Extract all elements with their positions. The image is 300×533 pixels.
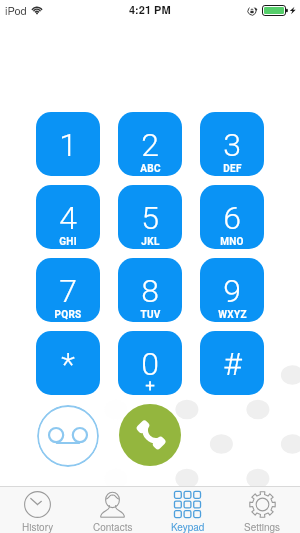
- staticText: 7: [59, 272, 77, 310]
- button[interactable]: 1: [36, 112, 100, 176]
- staticText: PQRS: [54, 309, 82, 321]
- button[interactable]: 7: [36, 258, 100, 322]
- button[interactable]: Contacts: [75, 487, 150, 533]
- button[interactable]: History: [0, 487, 75, 533]
- staticText: #: [223, 345, 242, 383]
- staticText: 3: [223, 126, 241, 164]
- staticText: 0: [141, 345, 159, 383]
- staticText: WXYZ: [218, 309, 247, 321]
- staticText: 4: [59, 199, 77, 237]
- staticText: ABC: [140, 163, 161, 175]
- staticText: 6: [223, 199, 241, 237]
- staticText: Keypad: [171, 520, 205, 533]
- button[interactable]: 9: [200, 258, 264, 322]
- staticText: *: [61, 345, 75, 383]
- button[interactable]: *: [36, 331, 100, 395]
- button[interactable]: Keypad: [150, 487, 225, 533]
- staticText: 9: [223, 272, 241, 310]
- staticText: Settings: [244, 520, 281, 533]
- button[interactable]: Voicemail: [37, 405, 99, 467]
- button[interactable]: 2: [118, 112, 182, 176]
- staticText: +: [145, 375, 155, 395]
- staticText: History: [22, 520, 54, 533]
- staticText: MNO: [220, 236, 244, 248]
- button[interactable]: 0: [118, 331, 182, 395]
- button[interactable]: 4: [36, 185, 100, 249]
- staticText: DEF: [223, 163, 242, 175]
- staticText: 4:21 PM: [129, 2, 171, 18]
- staticText: GHI: [59, 236, 77, 248]
- button[interactable]: Call: [119, 404, 181, 466]
- button[interactable]: #: [200, 331, 264, 395]
- button[interactable]: 3: [200, 112, 264, 176]
- staticText: 2: [141, 126, 159, 164]
- staticText: JKL: [141, 236, 160, 248]
- staticText: 8: [141, 272, 159, 310]
- button[interactable]: 8: [118, 258, 182, 322]
- staticText: 1: [59, 126, 77, 164]
- staticText: Contacts: [93, 520, 133, 533]
- button[interactable]: 5: [118, 185, 182, 249]
- staticText: TUV: [140, 309, 161, 321]
- staticText: 5: [141, 199, 159, 237]
- button[interactable]: 6: [200, 185, 264, 249]
- staticText: iPod: [5, 2, 27, 18]
- button[interactable]: Settings: [225, 487, 300, 533]
